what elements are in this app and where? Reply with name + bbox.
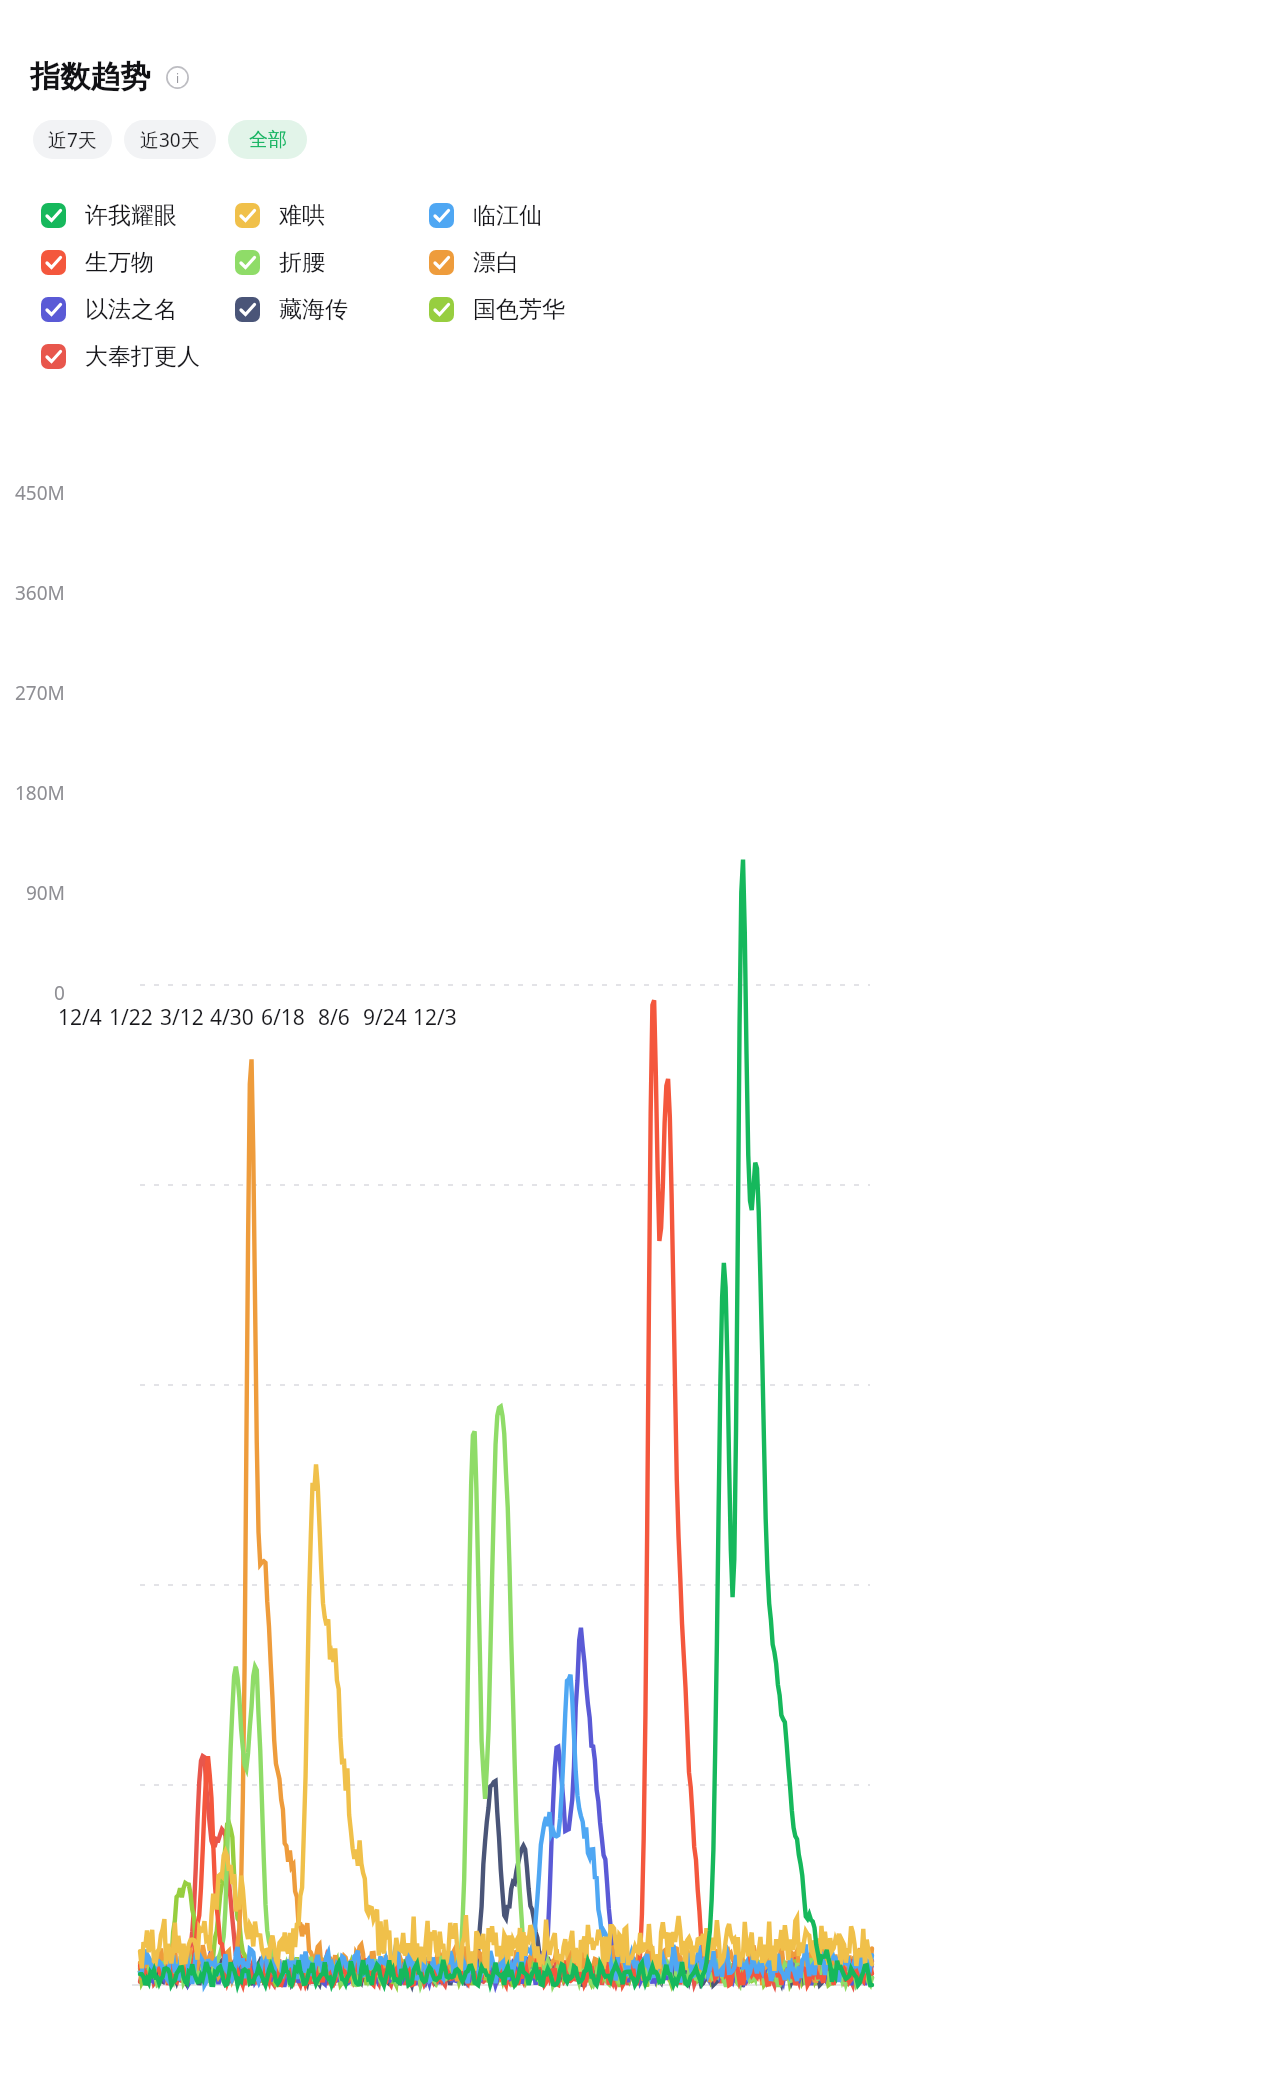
button[interactable]: 折腰 <box>235 248 325 277</box>
staticText: 许我耀眼 <box>85 201 177 230</box>
staticText: 360M <box>15 580 65 606</box>
staticText: 1/22 <box>109 1003 153 1032</box>
button[interactable]: 全部 <box>228 120 307 159</box>
staticText: 近7天 <box>48 127 97 153</box>
staticText: i <box>176 70 180 86</box>
button[interactable]: 大奉打更人 <box>41 342 200 371</box>
staticText: 折腰 <box>279 248 325 277</box>
button[interactable]: 以法之名 <box>41 295 177 324</box>
staticText: 临江仙 <box>473 201 542 230</box>
staticText: 270M <box>15 680 65 706</box>
staticText: 以法之名 <box>85 295 177 324</box>
button[interactable]: 临江仙 <box>429 201 542 230</box>
staticText: 4/30 <box>210 1003 254 1032</box>
staticText: 生万物 <box>85 248 154 277</box>
staticText: 近30天 <box>140 127 200 153</box>
staticText: 90M <box>26 880 65 906</box>
staticText: 藏海传 <box>279 295 348 324</box>
button[interactable]: 近7天 <box>33 120 112 159</box>
staticText: 难哄 <box>279 201 325 230</box>
button[interactable]: 生万物 <box>41 248 154 277</box>
button[interactable]: 国色芳华 <box>429 295 565 324</box>
staticText: 指数趋势 <box>30 58 150 96</box>
button[interactable]: 藏海传 <box>235 295 348 324</box>
staticText: 漂白 <box>473 248 519 277</box>
staticText: 0 <box>54 980 65 1006</box>
staticText: 180M <box>15 780 65 806</box>
staticText: 8/6 <box>318 1003 350 1032</box>
staticText: 12/3 <box>413 1003 457 1032</box>
staticText: 3/12 <box>160 1003 204 1032</box>
staticText: 全部 <box>249 128 287 152</box>
staticText: 9/24 <box>363 1003 407 1032</box>
staticText: 450M <box>15 480 65 506</box>
staticText: 国色芳华 <box>473 295 565 324</box>
button[interactable]: 近30天 <box>124 120 216 159</box>
button[interactable]: 漂白 <box>429 248 519 277</box>
button[interactable]: Info <box>166 66 189 89</box>
button[interactable]: 许我耀眼 <box>41 201 177 230</box>
staticText: 大奉打更人 <box>85 342 200 371</box>
staticText: 12/4 <box>58 1003 102 1032</box>
button[interactable]: 难哄 <box>235 201 325 230</box>
staticText: 6/18 <box>261 1003 305 1032</box>
